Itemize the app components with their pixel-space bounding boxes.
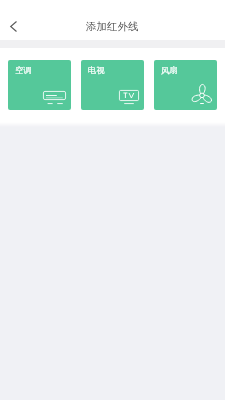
staticText: 电视: [88, 65, 105, 75]
staticText: 风扇: [161, 65, 178, 75]
button[interactable]: Back: [0, 12, 26, 40]
button[interactable]: 风扇: [154, 60, 217, 110]
staticText: 空调: [15, 65, 32, 75]
staticText: 添加红外线: [86, 20, 139, 33]
button[interactable]: 空调: [8, 60, 71, 110]
button[interactable]: 电视: [81, 60, 144, 110]
